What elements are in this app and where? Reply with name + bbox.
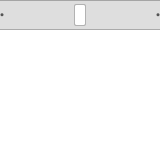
button[interactable]: Back	[0, 13, 3, 16]
button[interactable]: More	[156, 13, 159, 16]
